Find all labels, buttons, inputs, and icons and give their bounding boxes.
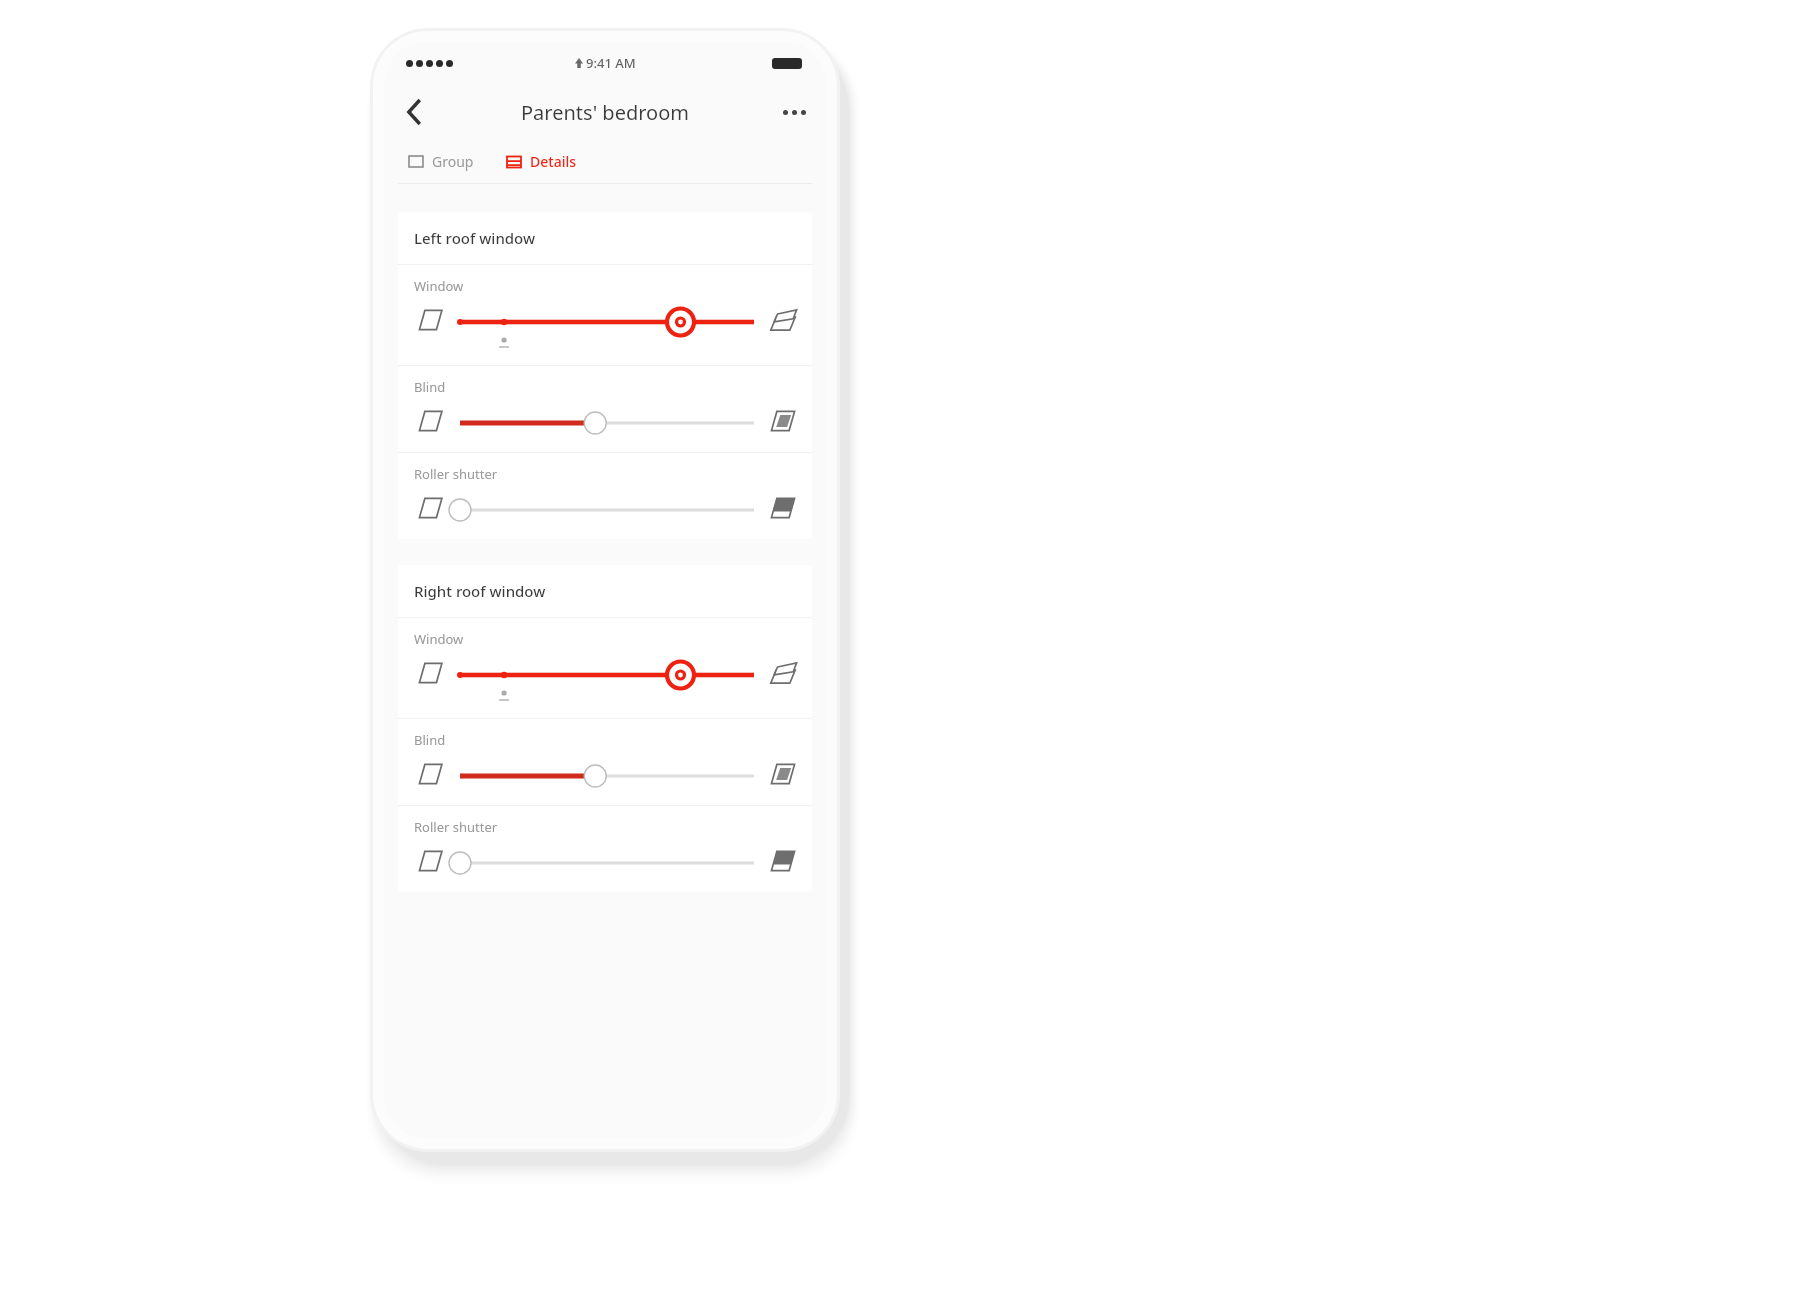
button[interactable]: Roller shutter xyxy=(398,806,812,892)
staticText: Blind xyxy=(414,378,446,396)
button[interactable]: Details xyxy=(502,146,581,177)
staticText: Parents' bedroom xyxy=(521,99,689,126)
staticText: Left roof window xyxy=(414,228,536,248)
staticText: Details xyxy=(530,152,577,171)
button[interactable]: Blind xyxy=(398,366,812,452)
staticText: Blind xyxy=(414,731,446,749)
button[interactable]: Window xyxy=(398,265,812,365)
button[interactable]: More options xyxy=(772,90,816,134)
staticText: Window xyxy=(414,630,464,648)
staticText: Roller shutter xyxy=(414,465,498,483)
button[interactable]: Window xyxy=(398,618,812,718)
staticText: Roller shutter xyxy=(414,818,498,836)
button[interactable]: Back xyxy=(392,90,436,134)
staticText: Right roof window xyxy=(414,581,546,601)
button[interactable]: Roller shutter xyxy=(398,453,812,539)
button[interactable]: Blind xyxy=(398,719,812,805)
staticText: Window xyxy=(414,277,464,295)
staticText: 9:41 AM xyxy=(586,54,636,72)
staticText: Group xyxy=(432,152,474,171)
button[interactable]: Group xyxy=(404,146,478,177)
